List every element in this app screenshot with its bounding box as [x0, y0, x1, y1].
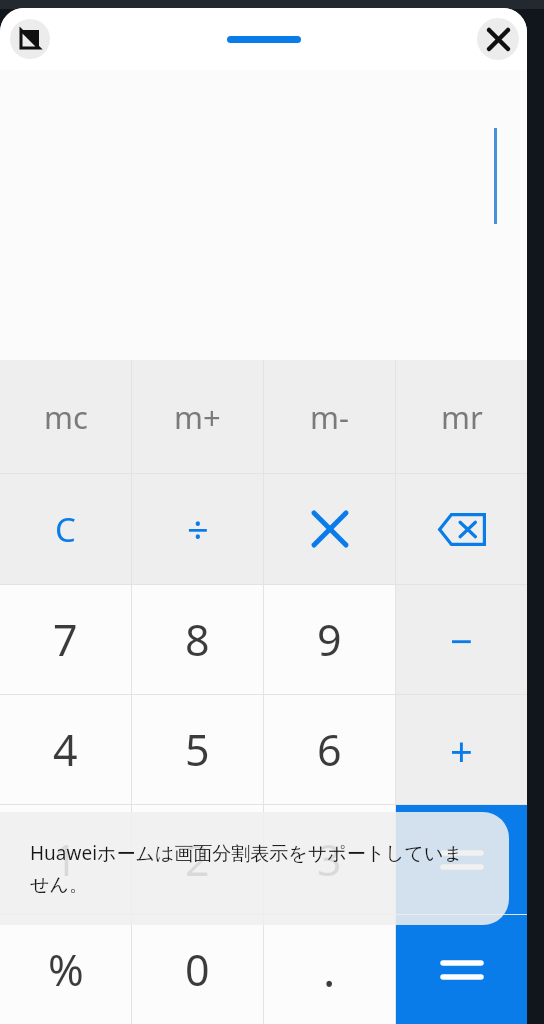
staticText: 6 — [317, 720, 342, 779]
staticText: 5 — [185, 720, 210, 779]
button[interactable]: Close — [477, 18, 519, 60]
button[interactable]: − — [396, 585, 527, 694]
button[interactable]: m- — [264, 360, 395, 473]
staticText: 7 — [53, 610, 78, 669]
button[interactable]: ÷ — [132, 474, 263, 584]
button[interactable]: Equals — [396, 915, 527, 1024]
button[interactable]: m+ — [132, 360, 263, 473]
button[interactable]: 4 — [0, 695, 131, 804]
staticText: 0 — [185, 940, 210, 999]
button[interactable]: Multiply — [264, 474, 395, 584]
staticText: . — [323, 938, 336, 1001]
button[interactable]: . — [264, 915, 395, 1024]
staticText: mr — [441, 396, 483, 438]
button[interactable]: Resize handle — [227, 36, 301, 43]
button[interactable]: Equals — [396, 805, 527, 914]
staticText: C — [55, 507, 76, 552]
button[interactable]: 9 — [264, 585, 395, 694]
staticText: 4 — [53, 720, 78, 779]
staticText: m+ — [174, 396, 221, 438]
staticText: + — [450, 723, 473, 777]
button[interactable]: 2 — [132, 805, 263, 914]
button[interactable]: Contrast — [10, 19, 50, 59]
button[interactable]: 7 — [0, 585, 131, 694]
button[interactable]: 3 — [264, 805, 395, 914]
staticText: % — [48, 940, 84, 999]
staticText: 1 — [53, 830, 78, 889]
button[interactable]: mc — [0, 360, 131, 473]
staticText: mc — [44, 396, 88, 438]
staticText: Huaweiホームは画面分割表示をサポートしていません。 — [30, 840, 479, 897]
button[interactable]: % — [0, 915, 131, 1024]
button[interactable]: 1 — [0, 805, 131, 914]
staticText: 2 — [185, 830, 210, 889]
staticText: ÷ — [187, 503, 209, 555]
button[interactable]: 5 — [132, 695, 263, 804]
button[interactable]: C — [0, 474, 131, 584]
staticText: − — [450, 613, 473, 667]
button[interactable]: 6 — [264, 695, 395, 804]
button[interactable]: Delete — [396, 474, 527, 584]
staticText: 9 — [317, 610, 342, 669]
button[interactable]: mr — [396, 360, 527, 473]
staticText: 8 — [185, 610, 210, 669]
staticText: m- — [310, 396, 349, 438]
button[interactable]: 8 — [132, 585, 263, 694]
button[interactable]: + — [396, 695, 527, 804]
button[interactable]: 0 — [132, 915, 263, 1024]
staticText: 3 — [317, 830, 342, 889]
